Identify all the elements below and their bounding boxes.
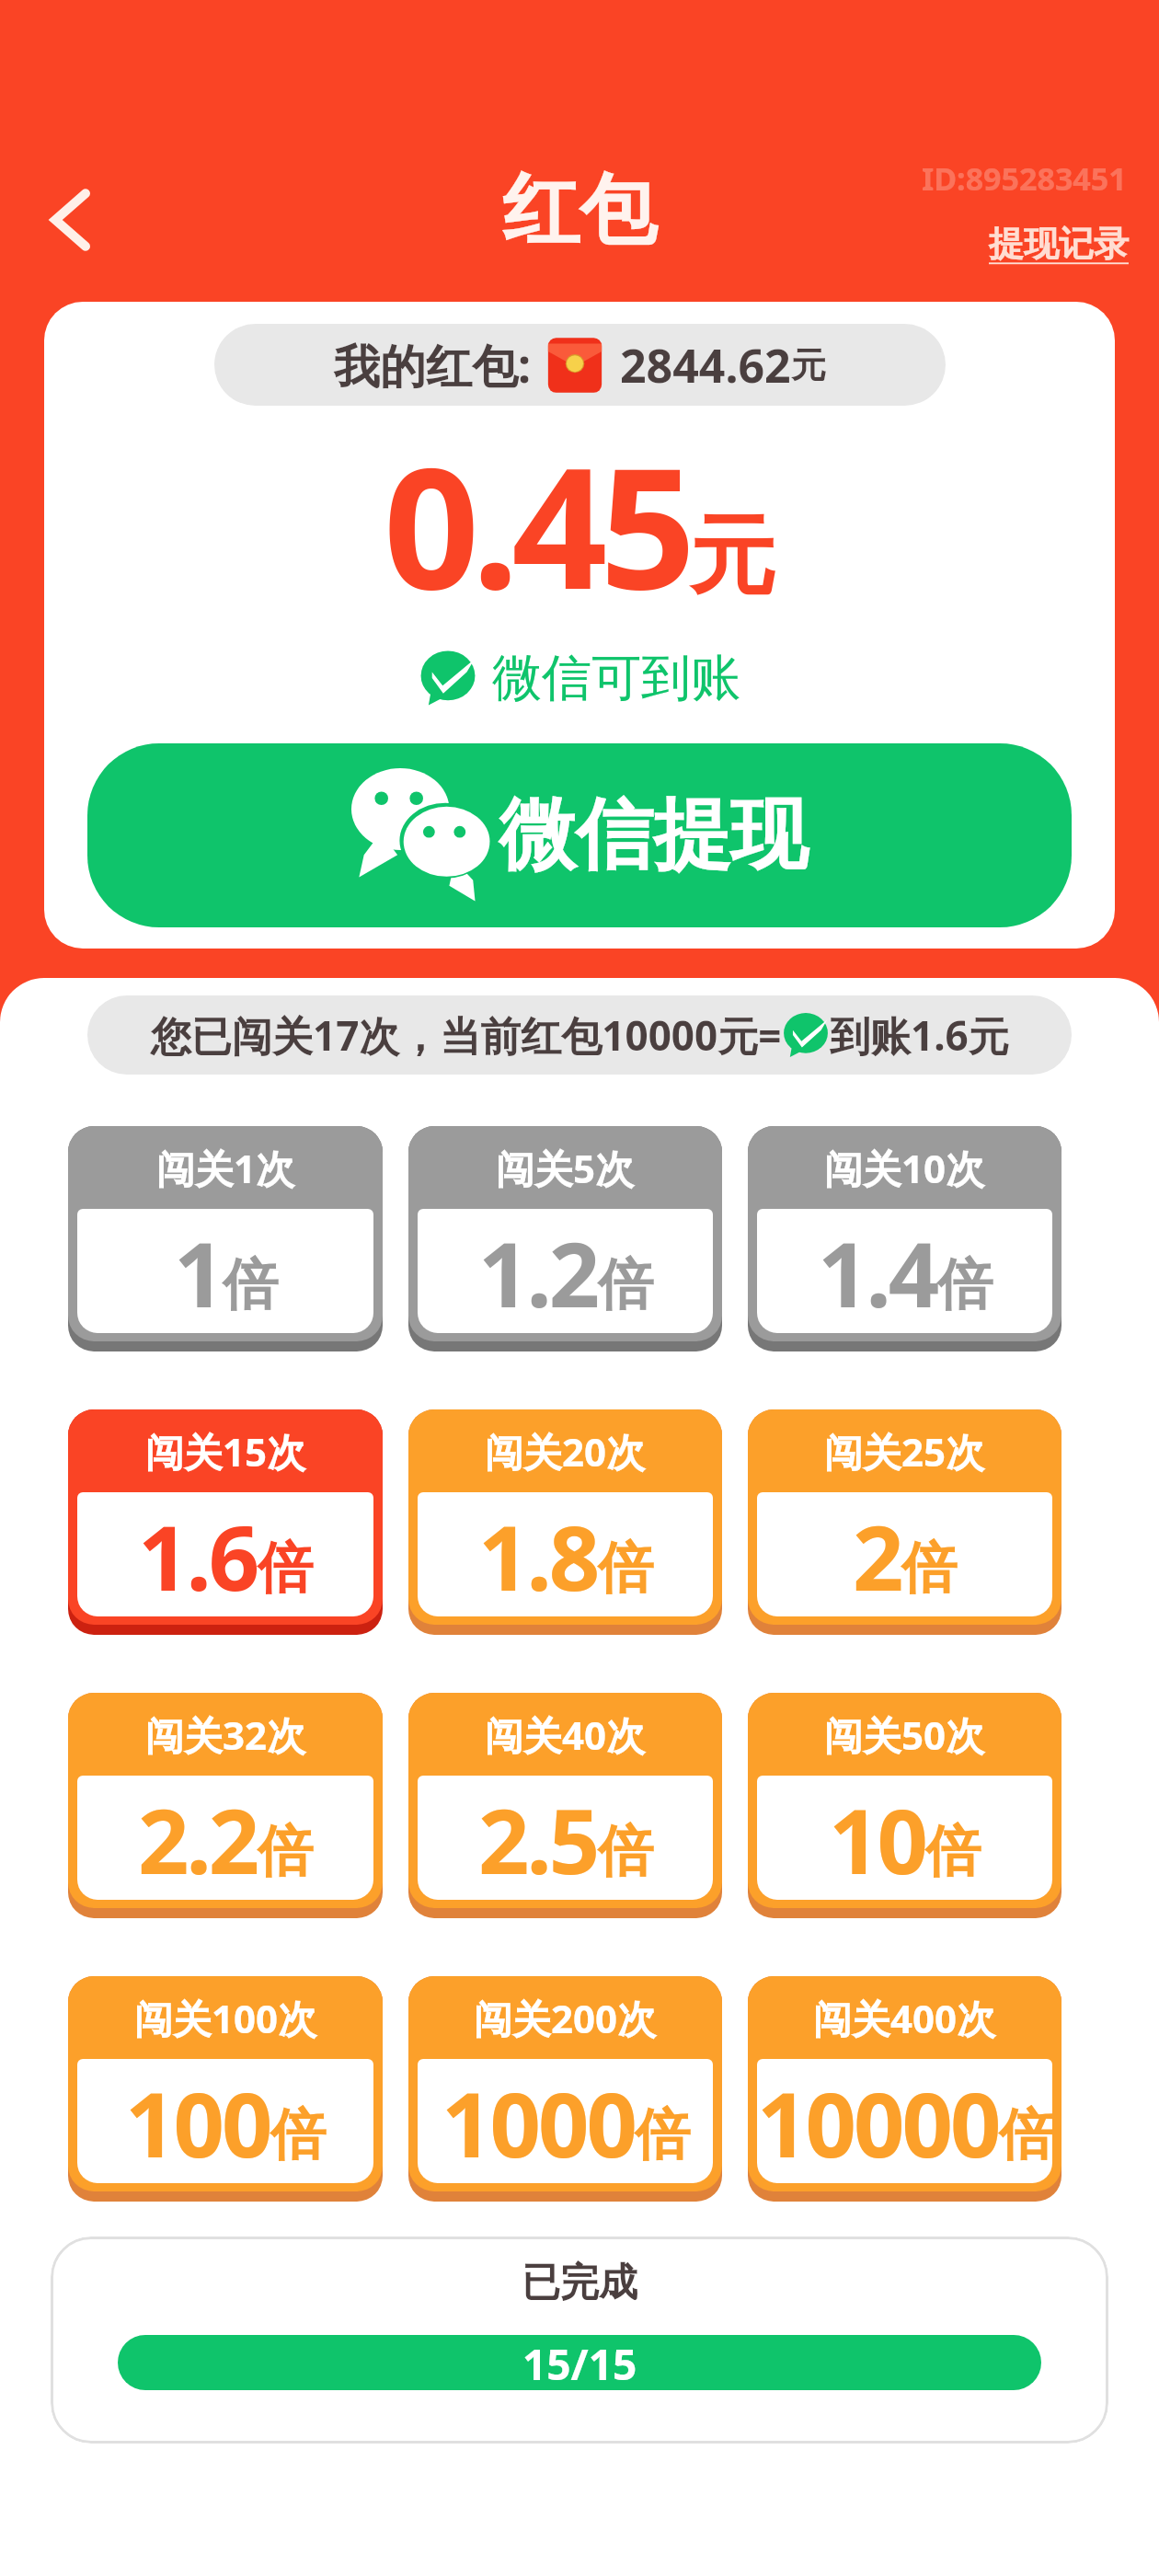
staticText: 1.2 <box>478 1212 598 1333</box>
staticText: 提现记录 <box>989 222 1129 266</box>
staticText: 15/15 <box>522 2335 637 2390</box>
staticText: 倍 <box>901 1534 957 1604</box>
staticText: 倍 <box>937 1250 993 1320</box>
staticText: 微信可到账 <box>492 647 740 709</box>
button[interactable]: 提现记录 <box>989 222 1129 266</box>
staticText: 1.4 <box>818 1212 937 1333</box>
staticText: 闯关15次 <box>145 1425 306 1478</box>
staticText: 红包 <box>502 162 657 259</box>
staticText: 倍 <box>258 1534 313 1604</box>
button[interactable]: 闯关25次 <box>748 1409 1061 1635</box>
staticText: 10000 <box>757 2062 999 2183</box>
staticText: 2844.62 <box>620 334 791 397</box>
button[interactable]: 闯关400次 <box>748 1976 1061 2202</box>
button[interactable]: 闯关32次 <box>68 1693 383 1918</box>
staticText: 2.5 <box>478 1778 598 1900</box>
staticText: 闯关100次 <box>134 1992 317 2044</box>
staticText: 倍 <box>925 1817 981 1887</box>
button[interactable]: Back <box>20 156 121 258</box>
staticText: 倍 <box>598 1250 653 1320</box>
staticText: 1 <box>174 1212 223 1333</box>
staticText: 闯关400次 <box>813 1992 996 2044</box>
staticText: 元 <box>791 343 826 387</box>
staticText: 闯关200次 <box>474 1992 657 2044</box>
staticText: 闯关10次 <box>824 1142 985 1194</box>
staticText: 1000 <box>442 2062 635 2183</box>
button[interactable]: 闯关100次 <box>68 1976 383 2202</box>
staticText: 倍 <box>598 1817 653 1887</box>
button[interactable]: 闯关40次 <box>408 1693 722 1918</box>
staticText: 1.8 <box>478 1495 598 1616</box>
staticText: 倍 <box>270 2100 326 2170</box>
staticText: 倍 <box>635 2100 690 2170</box>
staticText: 闯关5次 <box>496 1142 635 1194</box>
staticText: 倍 <box>223 1250 278 1320</box>
staticText: 倍 <box>598 1534 653 1604</box>
staticText: 闯关20次 <box>485 1425 646 1478</box>
staticText: 元 <box>689 501 775 610</box>
button[interactable]: 微信提现 <box>87 743 1072 927</box>
staticText: 闯关50次 <box>824 1708 985 1761</box>
button[interactable]: 闯关5次 <box>408 1126 722 1351</box>
staticText: 已完成 <box>522 2259 637 2307</box>
staticText: 闯关32次 <box>145 1708 306 1761</box>
staticText: 1.6 <box>138 1495 258 1616</box>
staticText: ID:895283451 <box>922 157 1127 200</box>
staticText: 闯关25次 <box>824 1425 985 1478</box>
staticText: 闯关40次 <box>485 1708 646 1761</box>
staticText: 10 <box>829 1778 925 1900</box>
staticText: 您已闯关17次，当前红包10000元= <box>151 1007 782 1063</box>
staticText: 闯关1次 <box>156 1142 295 1194</box>
button[interactable]: 闯关10次 <box>748 1126 1061 1351</box>
button[interactable]: 闯关200次 <box>408 1976 722 2202</box>
button[interactable]: 闯关15次 <box>68 1409 383 1635</box>
staticText: 倍 <box>999 2100 1052 2170</box>
staticText: 100 <box>125 2062 270 2183</box>
button[interactable]: 闯关50次 <box>748 1693 1061 1918</box>
button[interactable]: 闯关20次 <box>408 1409 722 1635</box>
staticText: 2 <box>853 1495 901 1616</box>
staticText: 0.45 <box>384 409 689 638</box>
staticText: 微信提现 <box>499 787 808 884</box>
staticText: 2.2 <box>138 1778 258 1900</box>
button[interactable]: 闯关1次 <box>68 1126 383 1351</box>
staticText: 倍 <box>258 1817 313 1887</box>
staticText: 到账1.6元 <box>830 1007 1009 1063</box>
staticText: 我的红包: <box>334 334 532 397</box>
